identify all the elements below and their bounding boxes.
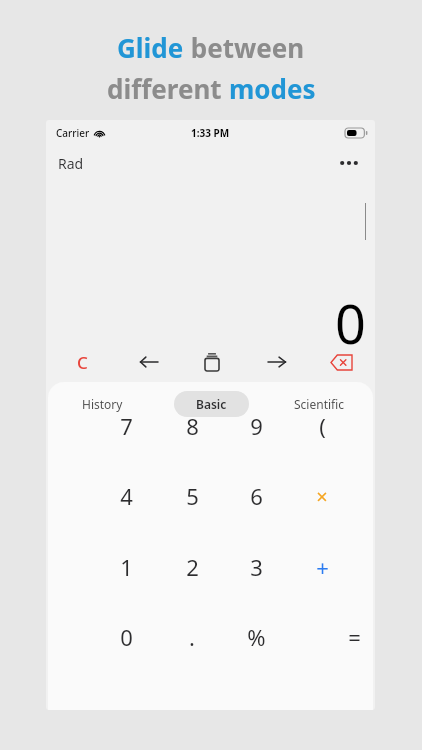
staticText: Rad	[58, 154, 84, 173]
staticText: 4	[120, 481, 133, 511]
staticText: 6	[250, 481, 263, 511]
staticText: 5	[186, 481, 199, 511]
button[interactable]: Move right	[253, 342, 301, 382]
button[interactable]: Move left	[124, 342, 172, 382]
staticText: Glide	[117, 30, 184, 65]
staticText: 7	[120, 411, 133, 441]
staticText: History	[82, 396, 123, 412]
staticText: 1	[120, 552, 133, 582]
button[interactable]: 7	[93, 400, 159, 452]
button[interactable]: 3	[223, 541, 289, 593]
staticText: different	[107, 71, 229, 106]
button[interactable]: 1	[93, 541, 159, 593]
button[interactable]: More options	[335, 150, 363, 176]
button[interactable]: =	[321, 611, 373, 663]
button[interactable]: 4	[93, 470, 159, 522]
button[interactable]: History	[48, 382, 157, 426]
button[interactable]: 0	[93, 611, 159, 663]
staticText: 3	[250, 552, 263, 582]
staticText: .	[189, 622, 195, 652]
button[interactable]: 9	[223, 400, 289, 452]
button[interactable]: ×	[289, 470, 355, 522]
staticText: 1:33 PM	[191, 126, 230, 140]
staticText: 0	[120, 622, 133, 652]
staticText: Scientific	[294, 396, 345, 412]
staticText: 2	[186, 552, 199, 582]
button[interactable]: Clear	[58, 342, 106, 382]
button[interactable]: .	[159, 611, 225, 663]
button[interactable]: Basic	[157, 382, 265, 426]
staticText: ×	[316, 483, 328, 510]
button[interactable]: (	[289, 400, 355, 452]
button[interactable]: 5	[159, 470, 225, 522]
button[interactable]: 8	[159, 400, 225, 452]
button[interactable]: Scientific	[265, 382, 373, 426]
button[interactable]: %	[223, 611, 289, 663]
button[interactable]: 2	[159, 541, 225, 593]
button[interactable]: 6	[223, 470, 289, 522]
staticText: (	[319, 411, 326, 441]
button[interactable]: +	[289, 541, 355, 593]
staticText: %	[247, 622, 266, 652]
staticText: =	[348, 622, 361, 652]
button[interactable]: Clipboard	[188, 342, 236, 382]
button[interactable]: Rad	[58, 154, 84, 173]
staticText: 8	[186, 411, 199, 441]
button[interactable]: Backspace	[317, 342, 365, 382]
staticText: C	[77, 351, 88, 374]
staticText: modes	[229, 71, 316, 106]
staticText: Basic	[196, 396, 227, 412]
staticText: 9	[250, 411, 263, 441]
staticText: 0	[335, 286, 366, 360]
staticText: between	[184, 30, 305, 65]
staticText: +	[316, 552, 329, 582]
staticText: Carrier	[56, 126, 90, 140]
